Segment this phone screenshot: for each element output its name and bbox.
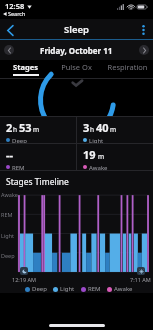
staticText: Respiration [107,62,148,72]
staticText: 3 [83,120,90,135]
button[interactable]: Back [0,20,20,40]
staticText: Search [8,10,26,17]
staticText: 12:19 AM [12,276,36,283]
staticText: 12:58 [5,1,25,11]
button[interactable]: 3 [77,117,153,143]
staticText: m [98,152,105,161]
staticText: m [33,125,40,134]
button[interactable]: Pulse Ox [51,60,102,78]
button[interactable]: -- [0,144,76,170]
staticText: m [110,125,117,134]
button[interactable]: 19 [77,144,153,170]
staticText: -- [6,147,14,162]
staticText: Deep [12,137,27,143]
staticText: Awake [89,164,108,170]
button[interactable]: Previous day [4,45,14,55]
staticText: Light [89,137,104,143]
staticText: Awake [1,191,18,198]
staticText: Deep [32,285,47,293]
staticText: h [13,125,19,134]
staticText: Pulse Ox [61,62,92,72]
button[interactable]: Deep [25,285,47,293]
staticText: 19 [83,147,96,162]
button[interactable]: Respiration [102,60,153,78]
button[interactable]: More options [133,20,153,40]
staticText: h [90,125,96,134]
staticText: Deep [1,252,15,259]
staticText: 7:11 AM [130,276,151,283]
staticText: Light [60,285,75,293]
button[interactable]: Next day [139,45,149,55]
staticText: Awake [114,285,133,293]
staticText: 53 [19,120,32,135]
button[interactable]: REM [81,285,101,293]
button[interactable]: Light [53,285,75,293]
staticText: REM [1,211,13,218]
button[interactable]: Awake [107,285,133,293]
staticText: REM [88,285,101,293]
staticText: Sleep [64,23,89,36]
staticText: Light [1,232,15,239]
staticText: 40 [96,120,109,135]
staticText: Stages [13,62,38,72]
staticText: 2 [6,120,13,135]
button[interactable]: Stages [0,60,51,78]
staticText: Stages Timeline [6,176,69,188]
button[interactable]: 2 [0,117,76,143]
staticText: Friday, October 11 [40,45,113,56]
staticText: REM [12,164,25,170]
